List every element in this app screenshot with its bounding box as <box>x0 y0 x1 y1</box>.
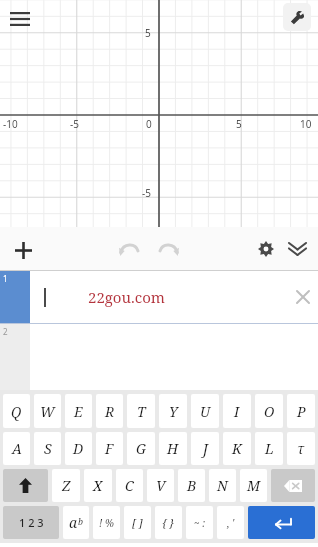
staticText: D <box>73 439 84 458</box>
button[interactable]: G <box>127 432 155 465</box>
button[interactable]: Collapse keypad <box>285 237 309 261</box>
staticText: P <box>297 402 306 421</box>
button[interactable]: N <box>209 469 236 502</box>
button[interactable]: { } <box>155 506 182 539</box>
button[interactable]: Z <box>52 469 80 502</box>
staticText: I <box>234 402 240 421</box>
staticText: 1 2 3 <box>19 515 44 530</box>
button[interactable]: Backspace <box>271 469 315 502</box>
staticText: C <box>125 476 134 495</box>
staticText: T <box>137 402 146 421</box>
staticText: L <box>265 439 274 458</box>
staticText: M <box>247 476 261 495</box>
staticText: O <box>264 402 275 421</box>
staticText: K <box>232 439 242 458</box>
staticText: { } <box>162 515 175 530</box>
staticText: ~ : <box>194 516 206 530</box>
button[interactable]: I <box>223 394 251 428</box>
staticText: τ <box>297 439 305 458</box>
staticText: 2 <box>3 326 8 337</box>
staticText: [ ] <box>132 515 143 530</box>
button[interactable]: L <box>255 432 283 465</box>
staticText: Y <box>169 402 178 421</box>
staticText: a <box>69 513 78 532</box>
staticText: b <box>78 515 84 527</box>
staticText: V <box>156 476 166 495</box>
staticText: A <box>12 439 22 458</box>
staticText: J <box>203 439 208 458</box>
button[interactable]: K <box>223 432 251 465</box>
button[interactable]: S <box>34 432 61 465</box>
button[interactable]: τ <box>287 432 315 465</box>
button[interactable]: T <box>127 394 155 428</box>
staticText: W <box>40 402 55 421</box>
button[interactable]: U <box>191 394 219 428</box>
button[interactable]: Enter <box>248 506 315 539</box>
staticText: 0 <box>146 117 152 131</box>
staticText: F <box>105 439 114 458</box>
button[interactable]: H <box>159 432 187 465</box>
staticText: N <box>217 476 228 495</box>
button[interactable]: 1 <box>0 271 318 323</box>
staticText: 5 <box>236 117 242 131</box>
button[interactable]: Graph settings <box>283 3 311 31</box>
staticText: 22gou.com <box>88 287 165 307</box>
staticText: Q <box>11 402 22 421</box>
button[interactable]: M <box>240 469 267 502</box>
staticText: , ' <box>227 516 235 530</box>
button[interactable]: B <box>178 469 205 502</box>
staticText: 5 <box>145 26 151 40</box>
button[interactable]: Y <box>159 394 187 428</box>
button[interactable]: , ' <box>217 506 244 539</box>
staticText: X <box>93 476 103 495</box>
button[interactable]: F <box>96 432 123 465</box>
button[interactable]: R <box>96 394 123 428</box>
button[interactable]: D <box>65 432 92 465</box>
staticText: H <box>167 439 179 458</box>
button[interactable]: ! % <box>93 506 120 539</box>
button[interactable]: C <box>116 469 143 502</box>
button[interactable]: Numbers <box>3 506 59 539</box>
button[interactable]: Shift <box>3 469 48 502</box>
staticText: -10 <box>3 117 18 131</box>
button[interactable]: Undo <box>116 238 142 260</box>
button[interactable]: a <box>63 506 89 539</box>
button[interactable]: Redo <box>156 238 182 260</box>
staticText: Z <box>62 476 71 495</box>
button[interactable]: Q <box>3 394 30 428</box>
button[interactable]: A <box>3 432 30 465</box>
button[interactable]: Add expression <box>10 237 36 263</box>
button[interactable]: J <box>191 432 219 465</box>
button[interactable]: Settings <box>254 237 278 261</box>
button[interactable]: E <box>65 394 92 428</box>
staticText: -5 <box>70 117 79 131</box>
staticText: B <box>187 476 197 495</box>
button[interactable]: [ ] <box>124 506 151 539</box>
staticText: R <box>105 402 115 421</box>
button[interactable]: W <box>34 394 61 428</box>
staticText: 10 <box>300 117 312 131</box>
button[interactable]: O <box>255 394 283 428</box>
staticText: ! % <box>99 516 114 530</box>
button[interactable]: P <box>287 394 315 428</box>
button[interactable]: Delete expression <box>292 286 314 308</box>
staticText: -5 <box>142 186 151 200</box>
button[interactable]: 2 <box>0 324 318 390</box>
button[interactable]: V <box>147 469 174 502</box>
staticText: 1 <box>3 273 8 284</box>
staticText: U <box>200 402 211 421</box>
button[interactable]: X <box>84 469 112 502</box>
button[interactable]: ~ : <box>186 506 213 539</box>
button[interactable]: Menu <box>8 10 32 28</box>
staticText: G <box>136 439 146 458</box>
staticText: E <box>74 402 83 421</box>
staticText: S <box>44 439 52 458</box>
